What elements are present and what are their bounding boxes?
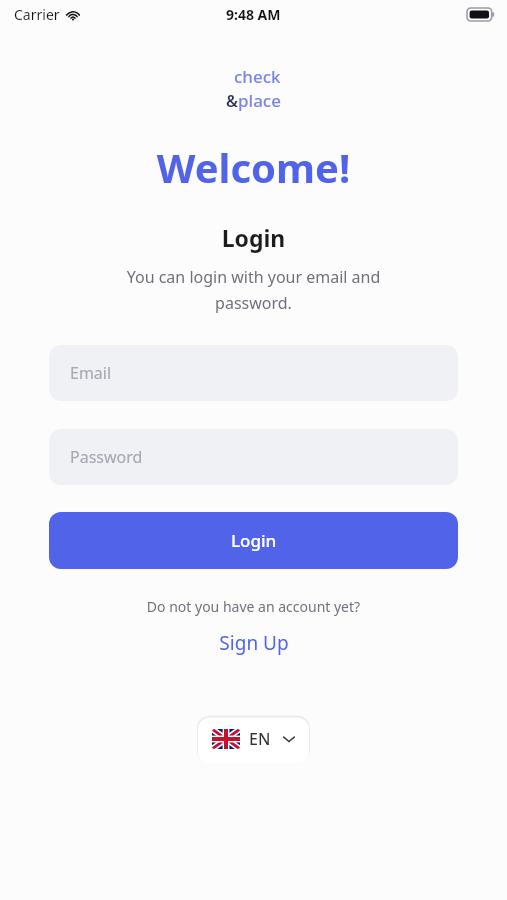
button[interactable]: Login	[49, 512, 458, 569]
staticText: place	[238, 89, 281, 112]
staticText: Email	[70, 362, 112, 384]
button[interactable]: Email	[49, 345, 458, 401]
staticText: 9:48 AM	[226, 5, 281, 24]
staticText: Carrier	[14, 5, 60, 24]
staticText: Password	[70, 446, 143, 468]
staticText: check	[234, 65, 281, 88]
staticText: Sign Up	[219, 630, 289, 656]
button[interactable]: Select language, English	[197, 715, 310, 763]
button[interactable]: Password	[49, 429, 458, 485]
staticText: Welcome!	[0, 140, 507, 194]
staticText: &	[226, 90, 238, 112]
button[interactable]: Sign Up	[211, 628, 297, 658]
staticText: Do not you have an account yet?	[0, 597, 507, 616]
staticText: You can login with your email and passwo…	[0, 266, 507, 314]
staticText: Login	[231, 529, 277, 552]
staticText: EN	[249, 728, 271, 750]
staticText: Login	[0, 222, 507, 253]
